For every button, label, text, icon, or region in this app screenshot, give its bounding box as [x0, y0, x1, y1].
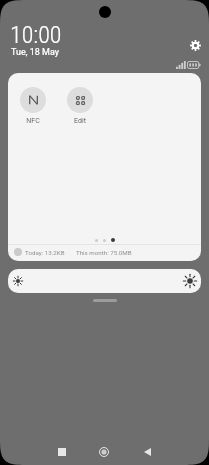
button[interactable]: Back — [134, 439, 160, 465]
staticText: 10:00 — [10, 21, 62, 49]
staticText: NFC — [26, 117, 40, 125]
button[interactable]: Recents — [49, 439, 75, 465]
staticText: This month: 75.0MB — [76, 249, 132, 256]
staticText: Today: 13.2KB — [25, 249, 65, 256]
button[interactable]: Home — [91, 439, 117, 465]
staticText: Tue, 18 May — [11, 47, 59, 58]
button[interactable]: Brightness — [8, 269, 201, 293]
button[interactable]: Edit — [67, 87, 93, 125]
staticText: Edit — [74, 117, 86, 125]
button[interactable]: Settings — [186, 36, 204, 54]
button[interactable]: NFC — [20, 87, 46, 125]
